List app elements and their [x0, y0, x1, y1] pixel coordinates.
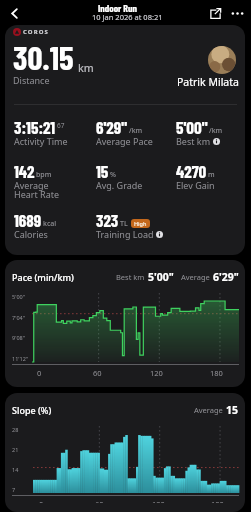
staticText: Activity Time	[14, 135, 68, 147]
staticText: Best km	[116, 272, 145, 282]
staticText: 9'08"	[12, 334, 25, 341]
staticText: 5'00"	[148, 270, 174, 284]
staticText: 3:15:21	[14, 117, 56, 137]
staticText: Calories	[14, 228, 48, 240]
staticText: 14	[12, 466, 19, 473]
staticText: 15	[96, 161, 109, 181]
staticText: 180	[211, 499, 224, 503]
staticText: 4270	[176, 161, 207, 181]
staticText: Distance	[13, 74, 50, 86]
staticText: bpm	[36, 170, 52, 180]
staticText: Average	[194, 405, 223, 415]
staticText: 11'12"	[12, 355, 29, 362]
staticText: Avg. Grade	[96, 179, 143, 191]
staticText: kcal	[43, 219, 57, 229]
staticText: TL	[120, 219, 128, 229]
staticText: 5'00"	[176, 117, 208, 137]
staticText: 60	[95, 499, 104, 503]
staticText: 67	[57, 121, 65, 130]
staticText: Training Load	[96, 228, 154, 240]
staticText: 60	[93, 368, 102, 378]
staticText: Best km	[176, 135, 211, 147]
staticText: Average	[181, 272, 210, 282]
staticText: 120	[150, 368, 163, 378]
staticText: /km	[129, 126, 143, 136]
staticText: 142	[14, 161, 35, 181]
staticText: 5'00"	[12, 293, 25, 300]
staticText: 1689	[14, 210, 42, 230]
staticText: 7'04"	[12, 314, 25, 321]
staticText: 6'29"	[213, 270, 239, 284]
staticText: Heart Rate	[14, 188, 60, 200]
button[interactable]: Back	[3, 2, 25, 24]
staticText: 0	[39, 499, 44, 503]
staticText: 0	[37, 368, 42, 378]
staticText: Average Pace	[96, 135, 153, 147]
staticText: km	[78, 61, 94, 75]
staticText: %	[110, 170, 116, 180]
staticText: 120	[152, 499, 165, 503]
staticText: 6'29"	[96, 117, 128, 137]
button[interactable]: More options	[227, 3, 247, 23]
staticText: /km	[209, 126, 223, 136]
staticText: 180	[210, 368, 223, 378]
staticText: Indoor Run	[98, 2, 137, 14]
staticText: High	[134, 220, 147, 227]
staticText: 21	[12, 446, 19, 453]
staticText: m	[208, 170, 215, 180]
staticText: 15	[226, 403, 239, 417]
staticText: Patrik Milata	[177, 75, 239, 89]
staticText: 7	[12, 486, 16, 493]
staticText: 10 Jan 2026 at 08:21	[92, 12, 163, 22]
staticText: 30.15	[13, 37, 74, 77]
staticText: 28	[12, 426, 19, 433]
staticText: COROS	[23, 28, 49, 36]
staticText: Slope (%)	[12, 404, 52, 416]
staticText: Elev Gain	[176, 179, 215, 191]
staticText: 323	[96, 210, 119, 230]
button[interactable]: Share	[205, 3, 225, 23]
staticText: Average	[14, 179, 49, 191]
staticText: Pace (min/km)	[12, 271, 74, 283]
